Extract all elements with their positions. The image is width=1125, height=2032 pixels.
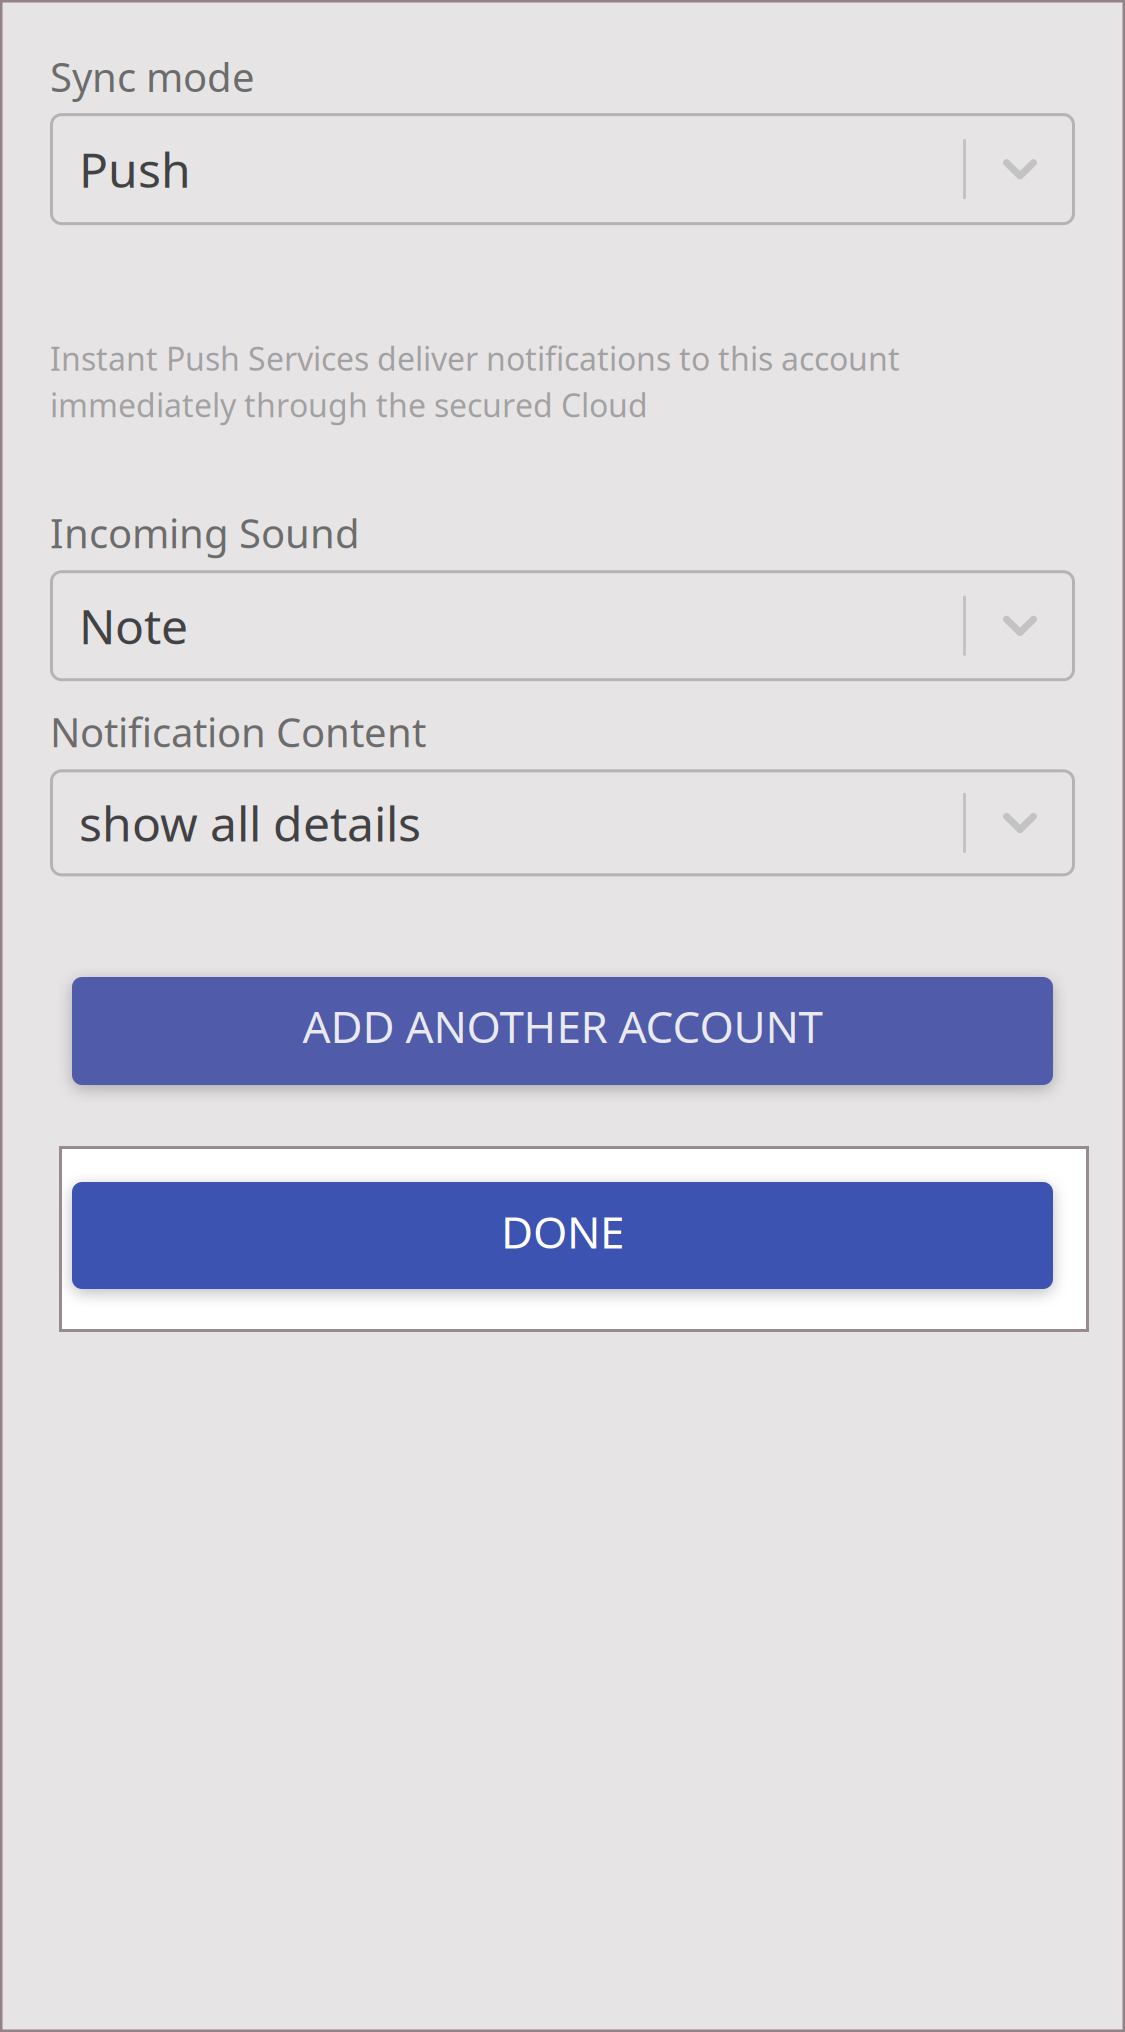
button[interactable]: Note [50,570,1075,681]
button[interactable]: ADD ANOTHER ACCOUNT [72,977,1053,1085]
staticText: Sync mode [50,50,255,103]
button[interactable]: show all details [50,769,1075,876]
staticText: immediately through the secured Cloud [50,384,648,426]
staticText: show all details [79,791,421,855]
staticText: DONE [501,1202,624,1261]
button[interactable]: DONE [59,1146,1089,1332]
staticText: Push [79,137,191,201]
staticText: Note [79,594,188,658]
button[interactable]: Push [50,113,1075,225]
staticText: Notification Content [50,705,426,758]
staticText: ADD ANOTHER ACCOUNT [302,997,822,1055]
staticText: Instant Push Services deliver notificati… [50,337,900,380]
staticText: Incoming Sound [50,506,360,559]
